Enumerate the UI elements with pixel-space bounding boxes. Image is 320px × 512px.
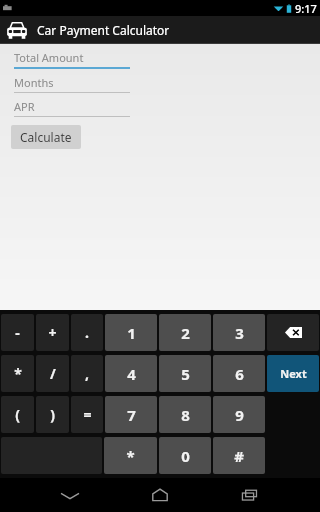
button[interactable]: , — [71, 355, 103, 392]
staticText: * — [14, 364, 22, 383]
button[interactable]: 9 — [213, 396, 265, 433]
staticText: 9:17 — [295, 1, 317, 16]
staticText: - — [15, 323, 20, 342]
staticText: Total Amount — [14, 50, 84, 65]
button[interactable]: Total Amount — [14, 48, 130, 73]
staticText: 4 — [127, 364, 136, 384]
button[interactable]: * — [1, 355, 34, 392]
button[interactable]: Months — [14, 73, 130, 97]
button[interactable]: Home — [115, 478, 205, 512]
button[interactable]: Delete — [267, 314, 319, 351]
button[interactable]: 4 — [105, 355, 157, 392]
staticText: 0 — [181, 446, 190, 466]
button[interactable]: Back — [25, 478, 115, 512]
staticText: Next — [280, 366, 307, 381]
staticText: * — [126, 446, 135, 466]
staticText: Calculate — [20, 129, 72, 145]
staticText: 3 — [235, 323, 244, 343]
staticText: ( — [15, 405, 20, 424]
button[interactable]: # — [213, 437, 265, 474]
staticText: ) — [50, 405, 55, 424]
staticText: Months — [14, 75, 54, 90]
button[interactable]: 3 — [213, 314, 265, 351]
staticText: = — [83, 405, 92, 424]
button[interactable]: 0 — [159, 437, 211, 474]
staticText: 8 — [181, 405, 190, 425]
button[interactable]: 6 — [213, 355, 265, 392]
button[interactable]: . — [71, 314, 103, 351]
button[interactable]: ) — [36, 396, 69, 433]
button[interactable]: Recents — [205, 478, 295, 512]
button[interactable]: 8 — [159, 396, 211, 433]
staticText: 7 — [127, 405, 136, 425]
staticText: 5 — [181, 364, 190, 384]
staticText: 6 — [235, 364, 244, 384]
staticText: / — [50, 364, 56, 383]
button[interactable]: * — [104, 437, 157, 474]
button[interactable]: / — [36, 355, 69, 392]
button[interactable]: Calculate — [11, 125, 81, 149]
staticText: 9 — [235, 405, 244, 425]
staticText: . — [85, 323, 89, 342]
button[interactable]: 2 — [159, 314, 211, 351]
button[interactable]: Next — [267, 355, 319, 392]
staticText: 1 — [127, 323, 136, 343]
staticText: , — [85, 364, 89, 383]
staticText: # — [234, 446, 244, 466]
button[interactable]: + — [36, 314, 69, 351]
button[interactable]: APR — [14, 97, 130, 121]
button[interactable]: ( — [1, 396, 34, 433]
button[interactable]: 5 — [159, 355, 211, 392]
staticText: APR — [14, 99, 35, 114]
button[interactable]: = — [71, 396, 103, 433]
staticText: 2 — [181, 323, 190, 343]
button[interactable]: 1 — [105, 314, 157, 351]
button[interactable]: - — [1, 314, 34, 351]
staticText: Car Payment Calculator — [37, 22, 170, 38]
button[interactable]: 7 — [105, 396, 157, 433]
staticText: + — [48, 323, 57, 342]
